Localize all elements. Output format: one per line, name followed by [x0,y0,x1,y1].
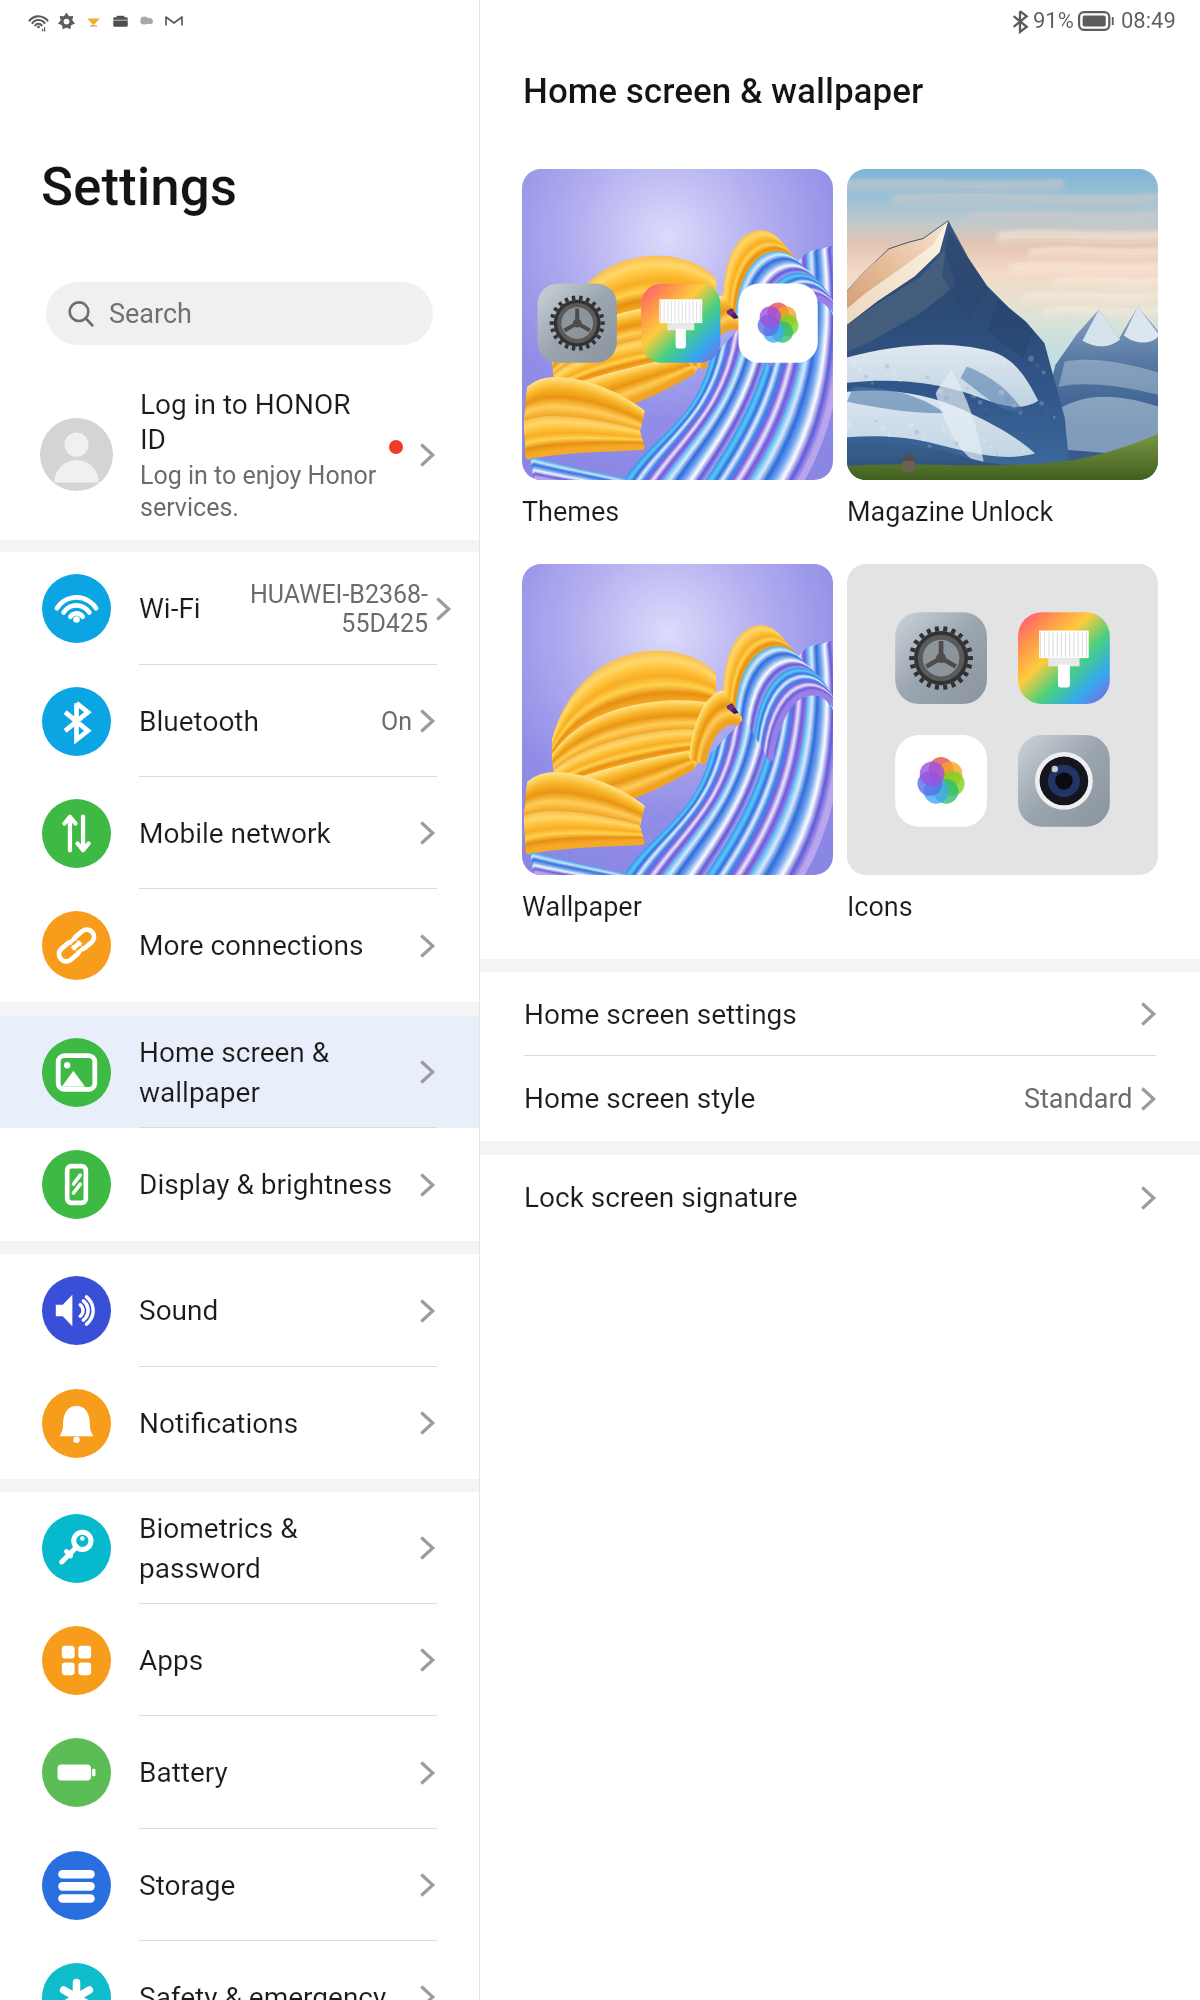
staticText: HUAWEI-B2368- [249,580,428,609]
button[interactable]: Magazine Unlock [847,169,1158,480]
staticText: Sound [139,1294,219,1327]
staticText: 55D425 [341,609,428,638]
button[interactable]: Lock screen signature [480,1155,1200,1240]
staticText: 08:49 [1121,8,1176,34]
staticText: Themes [522,496,620,528]
button[interactable]: Sound [0,1254,479,1367]
staticText: Bluetooth [139,705,259,738]
button[interactable]: Battery [0,1716,479,1829]
staticText: Battery [139,1756,228,1789]
staticText: On [380,707,412,736]
button[interactable]: Wi-Fi [0,552,479,665]
button[interactable]: Storage [0,1829,479,1941]
staticText: Mobile network [139,817,331,850]
staticText: Home screen & wallpaper [523,71,924,112]
button[interactable]: Icons [847,564,1158,875]
staticText: Home screen settings [524,998,1136,1031]
staticText: Log in to enjoy Honor services. [140,461,380,522]
staticText: Magazine Unlock [847,496,1054,528]
staticText: Home screen & wallpaper [139,1036,369,1109]
button[interactable]: Wallpaper [522,564,833,875]
button[interactable]: Home screen style [480,1056,1200,1141]
button[interactable]: Safety & emergency [0,1941,479,2000]
staticText: Display & brightness [139,1168,393,1201]
staticText: Notifications [139,1407,299,1440]
button[interactable]: Biometrics & password [0,1492,479,1604]
button[interactable]: Bluetooth [0,665,479,777]
staticText: Biometrics & password [139,1512,369,1585]
button[interactable]: Search [46,282,433,345]
staticText: Wi-Fi [139,592,201,625]
button[interactable]: Display & brightness [0,1128,479,1241]
staticText: Home screen style [524,1082,1024,1115]
button[interactable]: Home screen settings [480,972,1200,1056]
button[interactable]: Apps [0,1604,479,1716]
button[interactable]: Mobile network [0,777,479,889]
staticText: Icons [847,891,913,923]
staticText: Search [109,298,192,330]
staticText: Wallpaper [522,891,642,923]
staticText: Standard [1024,1083,1133,1115]
staticText: Settings [41,156,238,218]
button[interactable]: Log in to HONOR ID [0,369,479,540]
staticText: 91% [1033,8,1074,34]
staticText: Log in to HONOR ID [140,388,358,456]
button[interactable]: Themes [522,169,833,480]
staticText: Lock screen signature [524,1181,1136,1214]
staticText: Apps [139,1644,204,1677]
button[interactable]: Notifications [0,1367,479,1479]
staticText: Storage [139,1869,236,1902]
button[interactable]: Home screen & wallpaper [0,1016,479,1128]
staticText: More connections [139,929,364,962]
button[interactable]: More connections [0,889,479,1002]
staticText: Safety & emergency [139,1981,387,2000]
